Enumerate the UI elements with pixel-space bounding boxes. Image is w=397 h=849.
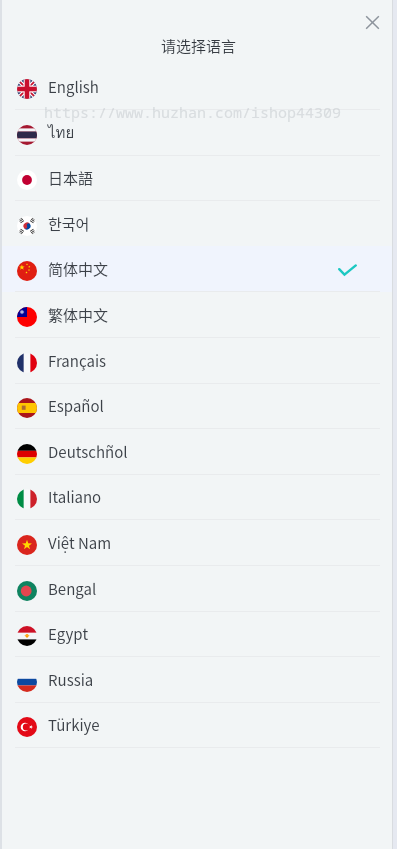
- staticText: Türkiye: [48, 714, 100, 736]
- staticText: 한국어: [48, 213, 90, 235]
- staticText: 简体中文: [48, 258, 109, 280]
- staticText: Deutschñol: [48, 441, 128, 463]
- button[interactable]: Egypt: [0, 611, 397, 657]
- staticText: Russia: [48, 669, 94, 691]
- button[interactable]: Français: [0, 338, 397, 384]
- staticText: Bengal: [48, 578, 97, 600]
- staticText: https://www.huzhan.com/ishop44309: [44, 102, 342, 122]
- button[interactable]: Bengal: [0, 566, 397, 612]
- button[interactable]: ไทย: [0, 110, 397, 156]
- button[interactable]: Close: [356, 6, 389, 39]
- button[interactable]: Việt Nam: [0, 520, 397, 566]
- button[interactable]: English: [0, 64, 397, 110]
- button[interactable]: Türkiye: [0, 702, 397, 748]
- button[interactable]: 繁体中文: [0, 292, 397, 338]
- staticText: 请选择语言: [161, 35, 237, 57]
- staticText: Egypt: [48, 623, 89, 645]
- button[interactable]: Russia: [0, 657, 397, 703]
- staticText: Việt Nam: [48, 532, 112, 554]
- staticText: Français: [48, 350, 107, 372]
- button[interactable]: 简体中文: [0, 246, 397, 292]
- staticText: 日本語: [48, 167, 94, 189]
- staticText: English: [48, 76, 99, 98]
- button[interactable]: 한국어: [0, 201, 397, 247]
- button[interactable]: Italiano: [0, 474, 397, 520]
- button[interactable]: Deutschñol: [0, 429, 397, 475]
- staticText: Italiano: [48, 486, 102, 508]
- staticText: ไทย: [48, 121, 75, 145]
- staticText: Español: [48, 395, 104, 417]
- button[interactable]: Español: [0, 383, 397, 429]
- button[interactable]: 日本語: [0, 155, 397, 201]
- staticText: 繁体中文: [48, 304, 109, 326]
